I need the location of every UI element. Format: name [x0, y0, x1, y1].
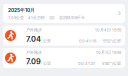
- staticText: 户外跑步: [26, 27, 42, 32]
- staticText: 7.09: [26, 57, 41, 66]
- staticText: 41分21秒: [28, 15, 45, 20]
- staticText: 7.09公里: [8, 15, 24, 20]
- staticText: 2次: [49, 15, 55, 20]
- staticText: 5'52"/公里: [103, 38, 121, 43]
- staticText: 公里: [43, 61, 51, 66]
- staticText: 00:41:16: [79, 39, 96, 43]
- staticText: 公里: [43, 38, 51, 43]
- button[interactable]: 户外跑步: [3, 25, 125, 45]
- staticText: 00:41:21: [78, 61, 95, 66]
- staticText: 10月4日 15:55: [95, 27, 121, 32]
- staticText: 总消耗518千卡: [59, 15, 85, 20]
- button[interactable]: 2025年10月: [3, 4, 125, 23]
- staticText: 7.04: [26, 34, 41, 44]
- staticText: 2025年10月: [8, 7, 35, 13]
- staticText: 户外跑步: [26, 50, 42, 55]
- staticText: 5'50"/公里: [102, 61, 121, 66]
- staticText: 10月1日 15:55: [96, 50, 121, 55]
- button[interactable]: 户外跑步: [3, 48, 125, 68]
